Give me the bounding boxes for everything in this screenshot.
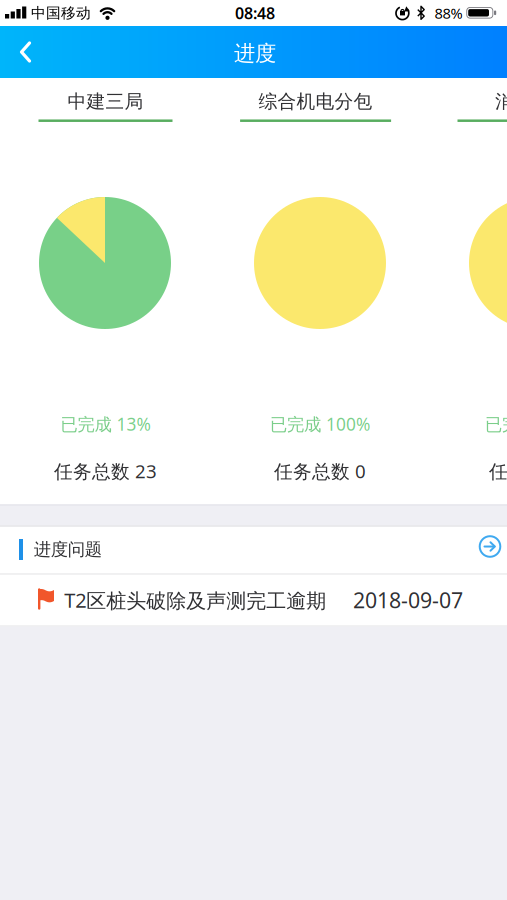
staticText: 88% <box>434 3 462 23</box>
staticText: 进度 <box>234 40 276 66</box>
staticText: 任务总数 0 <box>489 459 507 483</box>
staticText: T2区桩头破除及声测完工逾期 <box>64 587 326 613</box>
staticText: 任务总数 23 <box>54 459 157 483</box>
button[interactable]: Back <box>0 26 52 78</box>
staticText: 综合机电分包 <box>259 90 373 113</box>
staticText: 已完成 100% <box>485 412 507 435</box>
button[interactable]: 进度问题 <box>0 525 507 573</box>
button[interactable]: 消防分包 <box>448 78 507 125</box>
staticText: 08:48 <box>235 2 275 24</box>
staticText: 消防分包 <box>495 90 507 113</box>
button[interactable]: 中建三局 <box>20 78 190 125</box>
button[interactable]: T2区桩头破除及声测完工逾期 2018-09-07 <box>0 573 507 626</box>
staticText: 2018-09-07 <box>353 586 463 614</box>
button[interactable]: 综合机电分包 <box>231 78 401 125</box>
staticText: 进度问题 <box>34 539 102 560</box>
staticText: 中建三局 <box>67 90 143 113</box>
staticText: 已完成 100% <box>270 412 370 435</box>
staticText: 已完成 13% <box>60 412 150 435</box>
staticText: 中国移动 <box>31 4 91 22</box>
staticText: 任务总数 0 <box>274 459 366 483</box>
